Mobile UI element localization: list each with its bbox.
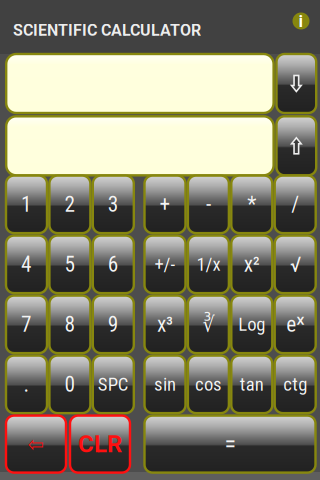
staticText: - [206, 192, 211, 217]
button[interactable]: ∛ [188, 296, 229, 353]
button[interactable]: sin [144, 356, 185, 413]
staticText: cos [195, 373, 222, 395]
staticText: x³ [157, 312, 173, 337]
button[interactable]: 1 [6, 176, 47, 233]
button[interactable]: + [144, 176, 185, 233]
button[interactable]: 3 [93, 176, 134, 233]
staticText: . [23, 372, 29, 397]
button[interactable]: / [275, 176, 316, 233]
button[interactable]: = [144, 416, 315, 473]
button[interactable]: cos [188, 356, 229, 413]
button[interactable]: +/- [144, 236, 185, 293]
staticText: * [247, 192, 256, 217]
button[interactable]: SPC [93, 356, 134, 413]
staticText: sin [154, 373, 176, 395]
staticText: SPC [98, 373, 129, 395]
staticText: = [224, 430, 235, 458]
staticText: CLR [78, 430, 122, 458]
staticText: ctg [283, 373, 307, 395]
staticText: / [291, 192, 299, 217]
staticText: 1 [21, 192, 32, 217]
button[interactable]: . [6, 356, 47, 413]
staticText: i [298, 11, 303, 31]
button[interactable]: CLR [70, 416, 130, 473]
button[interactable]: x² [231, 236, 272, 293]
staticText: eˣ [286, 312, 304, 337]
button[interactable]: - [188, 176, 229, 233]
staticText: 1/x [196, 253, 220, 275]
staticText: x² [244, 252, 260, 277]
staticText: + [159, 192, 170, 217]
staticText: +/- [154, 253, 175, 275]
button[interactable]: x³ [144, 296, 185, 353]
staticText: 6 [108, 252, 119, 277]
staticText: 4 [21, 252, 32, 277]
button[interactable]: Info [288, 6, 314, 36]
button[interactable]: * [231, 176, 272, 233]
staticText: 7 [21, 312, 32, 337]
staticText: 2 [64, 192, 75, 217]
button[interactable]: 9 [93, 296, 134, 353]
button[interactable]: 8 [49, 296, 90, 353]
staticText: ⇦ [28, 432, 44, 456]
button[interactable]: Log [231, 296, 272, 353]
staticText: √ [290, 252, 301, 277]
button[interactable]: 6 [93, 236, 134, 293]
button[interactable]: 4 [6, 236, 47, 293]
staticText: 3 [108, 192, 119, 217]
staticText: Log [238, 313, 265, 335]
button[interactable]: Scroll down [276, 54, 316, 113]
staticText: ∛ [202, 312, 214, 337]
button[interactable]: tan [231, 356, 272, 413]
staticText: 9 [108, 312, 119, 337]
button[interactable]: ⇦ [6, 416, 66, 473]
staticText: 0 [64, 372, 75, 397]
button[interactable]: ctg [275, 356, 316, 413]
button[interactable]: 2 [49, 176, 90, 233]
button[interactable]: 5 [49, 236, 90, 293]
button[interactable]: 1/x [188, 236, 229, 293]
button[interactable]: Scroll up [276, 116, 316, 175]
button[interactable]: √ [275, 236, 316, 293]
button[interactable]: 0 [49, 356, 90, 413]
staticText: tan [240, 373, 264, 395]
staticText: 8 [64, 312, 75, 337]
button[interactable]: eˣ [275, 296, 316, 353]
staticText: SCIENTIFIC CALCULATOR [13, 21, 201, 40]
button[interactable]: 7 [6, 296, 47, 353]
staticText: 5 [64, 252, 75, 277]
